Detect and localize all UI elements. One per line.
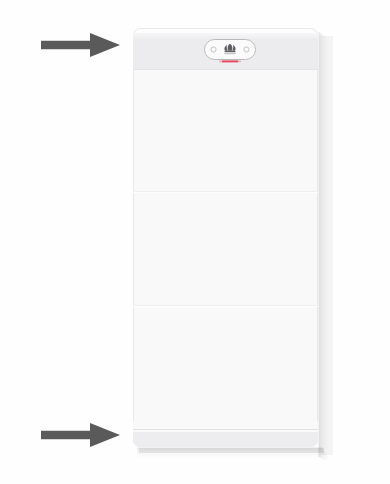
button[interactable]: Device control	[204, 39, 256, 61]
button[interactable]: Next	[242, 42, 254, 56]
button[interactable]: Previous	[207, 42, 219, 56]
button[interactable]: Bottom bar	[133, 429, 318, 447]
